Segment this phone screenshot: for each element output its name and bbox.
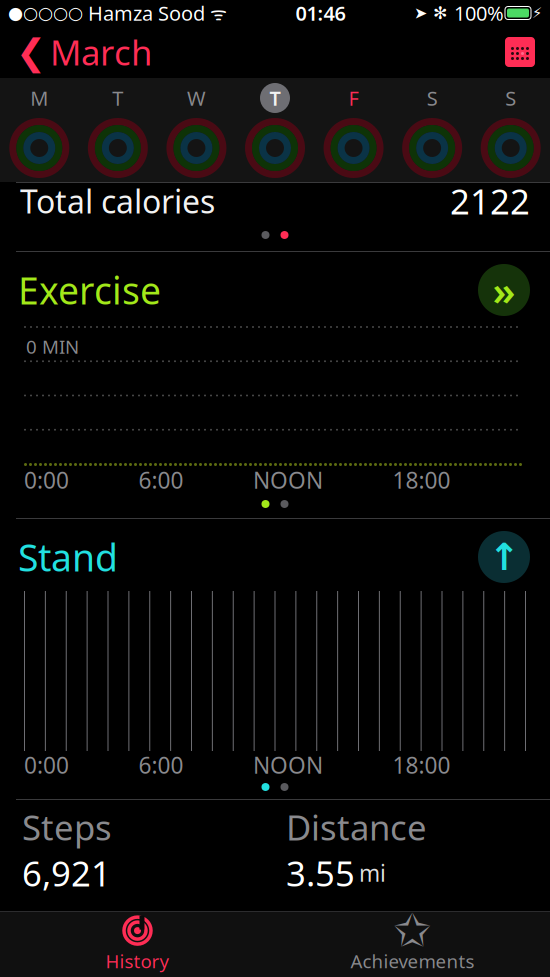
staticText: T [112, 85, 123, 111]
staticText: Stand [18, 532, 118, 582]
staticText: 6:00 [138, 750, 183, 780]
staticText: Distance [286, 804, 427, 850]
staticText: History [105, 949, 169, 973]
staticText: ⚡︎ [532, 5, 542, 21]
staticText: T [269, 85, 280, 111]
staticText: 0:00 [24, 750, 69, 780]
staticText: NOON [253, 750, 323, 780]
staticText: ↑ [488, 536, 519, 578]
staticText: M [30, 85, 48, 111]
button[interactable]: ❮ [0, 23, 152, 81]
button[interactable]: T [236, 82, 314, 178]
staticText: 3.55 [286, 850, 355, 896]
button[interactable]: Calendar [504, 30, 550, 74]
staticText: ✻ [427, 3, 454, 23]
button[interactable]: S [393, 82, 471, 178]
staticText: S [427, 85, 438, 111]
staticText: 18:00 [392, 750, 450, 780]
button[interactable]: ✩ [275, 909, 550, 977]
staticText: W [187, 85, 206, 111]
button[interactable]: S [471, 82, 550, 178]
staticText: » [492, 263, 515, 316]
staticText: 6:00 [138, 465, 183, 495]
button[interactable]: T [79, 82, 157, 178]
staticText: 0:00 [24, 465, 69, 495]
staticText: March [50, 29, 152, 75]
staticText: ✩ [393, 905, 431, 956]
button[interactable]: F [314, 82, 393, 178]
staticText: 18:00 [392, 465, 450, 495]
staticText: 6,921 [22, 850, 111, 896]
staticText: NOON [253, 465, 323, 495]
button[interactable]: Stand details [476, 529, 532, 585]
staticText: ●○○○○ [8, 3, 83, 23]
staticText: Hamza Sood [83, 0, 205, 26]
button[interactable]: W [157, 82, 236, 178]
staticText: Achievements [350, 949, 474, 973]
staticText: Steps [22, 804, 112, 850]
button[interactable]: M [0, 82, 79, 178]
staticText: 100% [454, 0, 504, 26]
button[interactable]: Exercise details [476, 262, 532, 318]
staticText: mi [359, 858, 386, 888]
staticText: S [505, 85, 516, 111]
staticText: ➤ [414, 4, 427, 22]
staticText: Exercise [18, 265, 161, 315]
staticText: ᯤ [205, 1, 227, 25]
staticText: Total calories [20, 180, 215, 222]
staticText: F [349, 85, 359, 111]
staticText: 0 MIN [26, 334, 79, 359]
staticText: 01:46 [295, 0, 345, 26]
staticText: 2122 [450, 178, 530, 224]
staticText: ❮ [16, 32, 46, 72]
button[interactable]: History [0, 909, 275, 977]
